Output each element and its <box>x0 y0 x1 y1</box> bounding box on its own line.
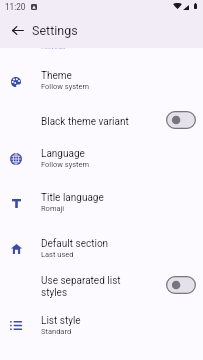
button[interactable]: Back <box>5 18 30 43</box>
staticText: styles <box>41 287 68 299</box>
staticText: Follow system <box>41 82 90 91</box>
staticText: 11:20 <box>5 2 26 12</box>
button[interactable]: Default section <box>0 227 203 270</box>
staticText: Theme <box>41 70 72 82</box>
staticText: Black theme variant <box>41 116 129 128</box>
staticText: Romaji <box>41 204 65 213</box>
button[interactable]: Use separated list <box>0 264 203 309</box>
staticText: List style <box>41 315 81 327</box>
staticText: Language <box>41 148 85 160</box>
staticText: Settings <box>32 23 78 38</box>
button[interactable]: Theme <box>0 59 203 102</box>
staticText: Title language <box>41 192 104 204</box>
staticText: Last used <box>41 250 74 259</box>
button[interactable]: Title language <box>0 181 203 224</box>
button[interactable]: Black theme variant <box>0 104 203 139</box>
staticText: Use separated list <box>41 275 121 287</box>
staticText: Default section <box>41 238 109 250</box>
staticText: Display <box>41 47 66 49</box>
button[interactable]: Language <box>0 137 203 180</box>
staticText: Standard <box>41 327 72 336</box>
button[interactable]: List style <box>0 304 203 347</box>
staticText: Follow system <box>41 160 90 169</box>
